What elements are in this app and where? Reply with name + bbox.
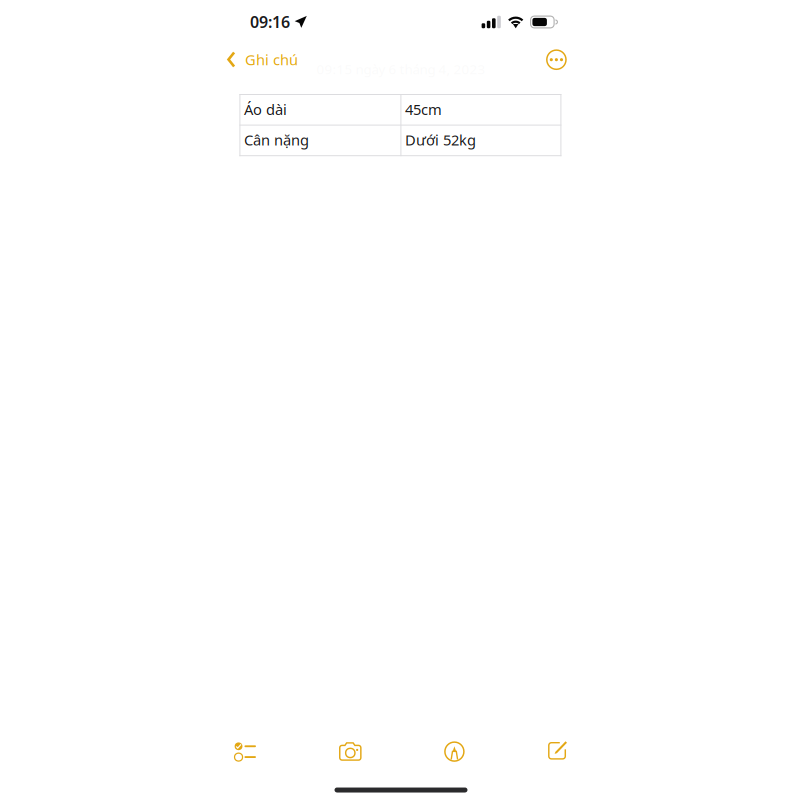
button[interactable]: New note — [533, 728, 583, 772]
button[interactable]: Ghi chú — [222, 43, 303, 76]
button[interactable]: More options — [540, 43, 573, 76]
staticText: 45cm — [405, 100, 442, 119]
staticText: Cân nặng — [244, 130, 309, 150]
staticText: Ghi chú — [245, 50, 298, 69]
staticText: Áo dài — [244, 100, 287, 119]
button[interactable]: Camera — [325, 729, 375, 773]
staticText: 09:16 — [250, 11, 290, 32]
button[interactable]: Markup — [429, 730, 479, 774]
button[interactable]: Checklist — [220, 730, 270, 774]
staticText: Dưới 52kg — [405, 130, 476, 150]
